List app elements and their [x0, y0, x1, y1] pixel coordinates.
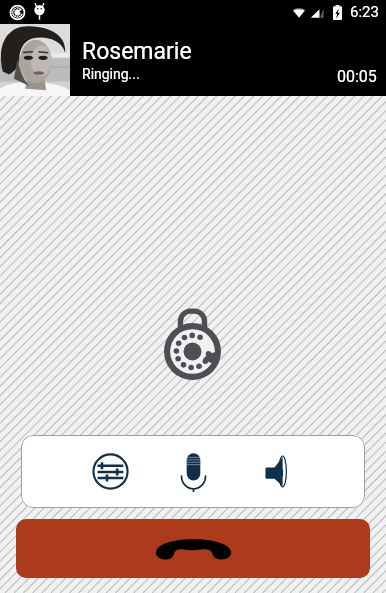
staticText: Rosemarie: [82, 38, 192, 65]
staticText: Ringing...: [82, 66, 140, 82]
button[interactable]: Speaker: [237, 435, 365, 508]
button[interactable]: Mute microphone: [151, 435, 237, 508]
button[interactable]: Call settings: [21, 435, 151, 508]
button[interactable]: End call: [16, 519, 370, 578]
staticText: 6:23: [350, 3, 379, 21]
staticText: 00:05: [337, 67, 377, 86]
